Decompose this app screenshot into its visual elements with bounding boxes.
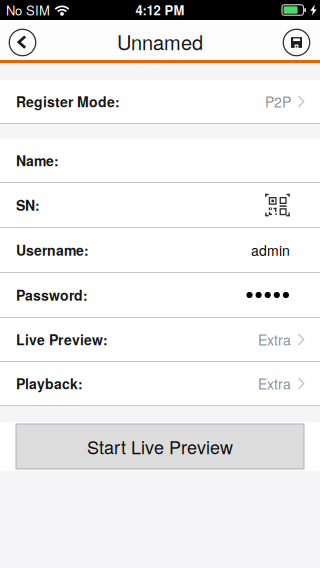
button[interactable]: SN:: [0, 183, 320, 228]
staticText: Live Preview:: [16, 329, 108, 349]
staticText: Start Live Preview: [87, 434, 233, 459]
button[interactable]: Playback:: [0, 362, 320, 406]
staticText: Playback:: [16, 373, 83, 393]
staticText: Unnamed: [117, 27, 203, 56]
staticText: Password:: [16, 285, 88, 305]
staticText: Extra: [258, 373, 291, 393]
staticText: admin: [251, 240, 290, 260]
staticText: Register Mode:: [16, 91, 120, 111]
button[interactable]: Start Live Preview: [16, 424, 304, 469]
button[interactable]: Live Preview:: [0, 318, 320, 362]
button[interactable]: Register Mode:: [0, 80, 320, 124]
staticText: 4:12 PM: [135, 1, 184, 19]
button[interactable]: Save: [274, 25, 319, 60]
staticText: P2P: [265, 91, 291, 111]
button[interactable]: Back: [0, 25, 45, 60]
staticText: Username:: [16, 240, 89, 260]
staticText: Extra: [258, 329, 291, 349]
button[interactable]: Name:: [0, 139, 320, 183]
staticText: No SIM: [6, 1, 50, 19]
staticText: Name:: [16, 150, 59, 170]
button[interactable]: Password:: [0, 273, 320, 318]
staticText: SN:: [16, 195, 40, 215]
button[interactable]: Username:: [0, 228, 320, 273]
